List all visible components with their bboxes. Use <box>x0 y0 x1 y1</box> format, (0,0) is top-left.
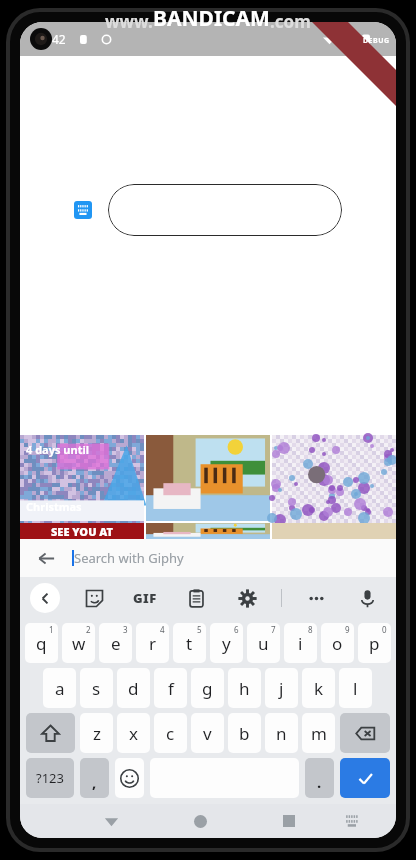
button[interactable]: Hide keyboard <box>95 805 127 837</box>
staticText: 3 <box>123 624 128 635</box>
button[interactable]: , <box>80 758 109 798</box>
staticText: d <box>128 677 139 700</box>
button[interactable]: See you at GIF <box>20 523 144 539</box>
button[interactable]: w <box>62 623 95 663</box>
staticText: x <box>129 722 138 745</box>
staticText: Search with Giphy <box>74 549 184 567</box>
button[interactable]: Voice input <box>350 581 384 615</box>
staticText: p <box>369 632 380 655</box>
staticText: Christmas <box>26 499 82 514</box>
button[interactable]: b <box>228 713 261 753</box>
button[interactable]: Back <box>30 583 60 613</box>
button[interactable]: Back <box>20 539 396 577</box>
button[interactable]: e <box>99 623 132 663</box>
staticText: .com <box>270 10 311 33</box>
button[interactable]: Backspace <box>340 713 390 753</box>
staticText: e <box>111 632 121 655</box>
staticText: q <box>36 632 47 655</box>
staticText: n <box>276 722 287 745</box>
button[interactable]: a <box>43 668 76 708</box>
staticText: u <box>258 632 269 655</box>
staticText: i <box>298 632 303 655</box>
staticText: z <box>93 722 101 745</box>
staticText: , <box>92 772 97 792</box>
staticText: g <box>202 677 213 700</box>
staticText: y <box>222 632 231 655</box>
button[interactable]: q <box>25 623 58 663</box>
button[interactable]: t <box>173 623 206 663</box>
button[interactable]: Emoji <box>115 758 144 798</box>
button[interactable]: Keyboard <box>74 201 92 219</box>
button[interactable]: y <box>210 623 243 663</box>
staticText: 0 <box>382 624 387 635</box>
button[interactable]: Christmas countdown GIF <box>20 435 144 521</box>
staticText: t <box>186 632 193 655</box>
button[interactable]: Switch keyboard <box>337 806 367 836</box>
staticText: 42 <box>52 31 66 47</box>
staticText: l <box>353 677 358 700</box>
button[interactable]: Snow texture GIF <box>272 435 396 521</box>
button[interactable]: u <box>247 623 280 663</box>
button[interactable]: Shift <box>26 713 75 753</box>
staticText: . <box>317 772 322 792</box>
button[interactable]: p <box>358 623 391 663</box>
button[interactable]: Settings <box>230 581 264 615</box>
button[interactable]: d <box>117 668 150 708</box>
button[interactable]: m <box>302 713 335 753</box>
button[interactable]: r <box>136 623 169 663</box>
staticText: 8 <box>308 624 313 635</box>
staticText: 4 days until <box>26 442 89 457</box>
staticText: b <box>239 722 250 745</box>
staticText: a <box>55 677 65 700</box>
staticText: DEBUG <box>363 36 390 46</box>
staticText: www. <box>105 10 153 33</box>
staticText: o <box>332 632 343 655</box>
staticText: ?123 <box>36 769 64 787</box>
button[interactable]: z <box>80 713 113 753</box>
button[interactable]: n <box>265 713 298 753</box>
button[interactable]: j <box>265 668 298 708</box>
button[interactable]: Enter <box>340 758 390 798</box>
button[interactable]: Home <box>184 805 216 837</box>
staticText: GIF <box>133 589 157 607</box>
button[interactable]: GIF <box>128 581 162 615</box>
staticText: s <box>92 677 101 700</box>
staticText: BANDICAM <box>153 4 270 33</box>
button[interactable]: ?123 <box>26 758 74 798</box>
button[interactable]: k <box>302 668 335 708</box>
staticText: 6 <box>234 624 239 635</box>
button[interactable]: More options <box>299 581 333 615</box>
button[interactable]: l <box>339 668 372 708</box>
staticText: SEE YOU AT <box>51 524 114 539</box>
staticText: 1 <box>49 624 54 635</box>
button[interactable]: v <box>191 713 224 753</box>
button[interactable]: x <box>117 713 150 753</box>
button[interactable]: . <box>305 758 334 798</box>
button[interactable]: i <box>284 623 317 663</box>
staticText: 5 <box>197 624 202 635</box>
button[interactable]: f <box>154 668 187 708</box>
staticText: c <box>166 722 175 745</box>
button[interactable]: Clipboard <box>179 581 213 615</box>
button[interactable]: g <box>191 668 224 708</box>
button[interactable]: GIF preview <box>146 523 270 539</box>
staticText: f <box>168 677 174 700</box>
staticText: k <box>314 677 324 700</box>
button[interactable]: c <box>154 713 187 753</box>
staticText: 7 <box>271 624 276 635</box>
button[interactable]: s <box>80 668 113 708</box>
staticText: 2 <box>86 624 91 635</box>
staticText: 9 <box>345 624 350 635</box>
staticText: j <box>279 677 284 700</box>
button[interactable]: Back <box>34 546 58 570</box>
button[interactable] <box>108 184 342 236</box>
button[interactable]: Cartoon cat GIF <box>146 435 270 521</box>
button[interactable]: o <box>321 623 354 663</box>
button[interactable]: Recents <box>273 805 305 837</box>
button[interactable]: h <box>228 668 261 708</box>
staticText: h <box>239 677 250 700</box>
staticText: r <box>149 632 157 655</box>
button[interactable]: Stickers <box>77 581 111 615</box>
